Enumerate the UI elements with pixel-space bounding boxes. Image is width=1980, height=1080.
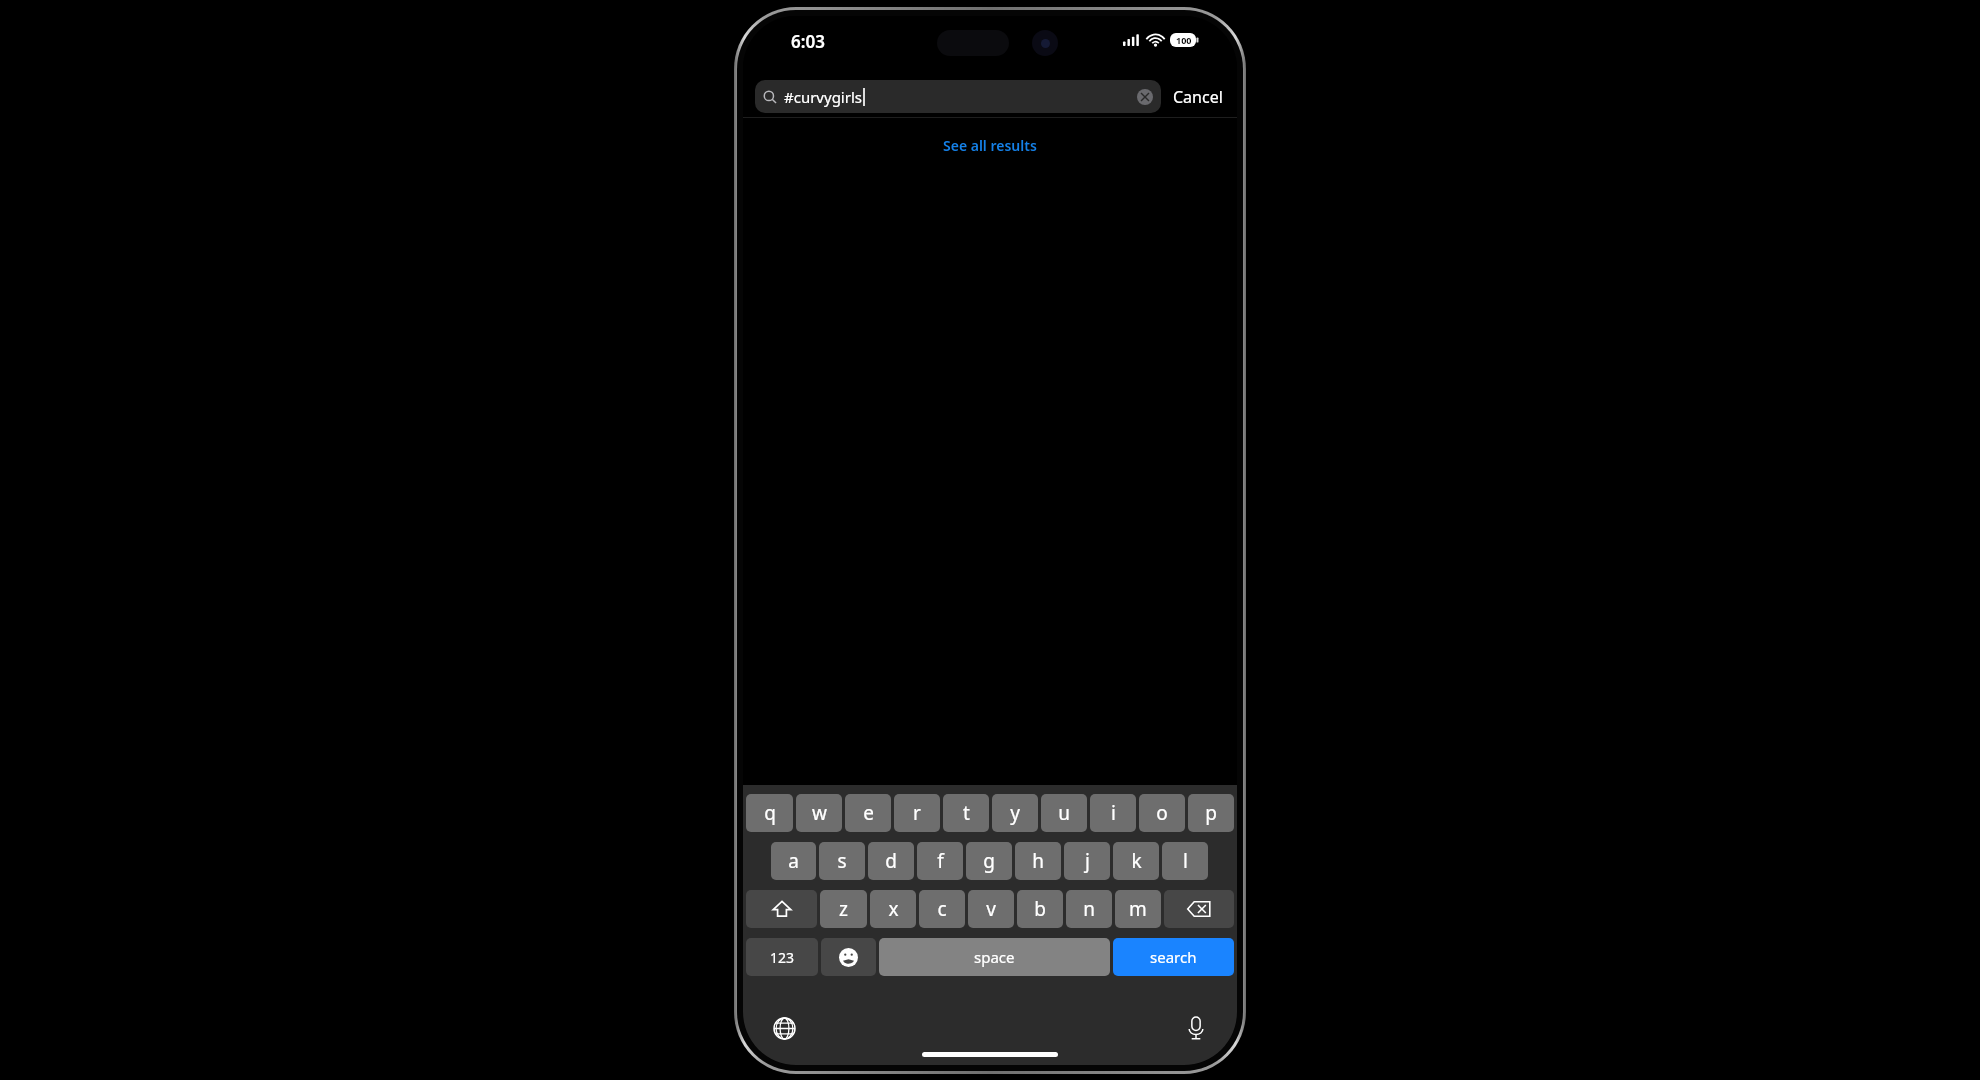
button[interactable]: y: [992, 794, 1038, 832]
button[interactable]: q: [746, 794, 793, 832]
button[interactable]: h: [1015, 842, 1061, 880]
staticText: r: [913, 800, 921, 826]
button[interactable]: #curvygirls: [755, 80, 1161, 113]
button[interactable]: j: [1064, 842, 1110, 880]
staticText: space: [974, 947, 1015, 967]
button[interactable]: Change keyboard language: [767, 1011, 801, 1045]
staticText: j: [1085, 848, 1090, 874]
button[interactable]: o: [1139, 794, 1185, 832]
staticText: v: [986, 896, 996, 922]
staticText: t: [963, 800, 970, 826]
staticText: #curvygirls: [784, 87, 862, 107]
button[interactable]: z: [820, 890, 867, 928]
staticText: z: [839, 896, 848, 922]
button[interactable]: b: [1017, 890, 1063, 928]
staticText: a: [788, 848, 799, 874]
staticText: m: [1129, 896, 1147, 922]
staticText: f: [937, 848, 944, 874]
button[interactable]: See all results: [927, 132, 1053, 159]
button[interactable]: Cancel: [1171, 82, 1225, 112]
button[interactable]: a: [771, 842, 816, 880]
button[interactable]: i: [1090, 794, 1136, 832]
staticText: c: [937, 896, 947, 922]
button[interactable]: t: [943, 794, 989, 832]
button[interactable]: Emoji: [821, 938, 876, 976]
button[interactable]: x: [870, 890, 916, 928]
staticText: o: [1156, 800, 1168, 826]
button[interactable]: Clear text: [1137, 89, 1153, 105]
staticText: x: [888, 896, 899, 922]
staticText: See all results: [943, 136, 1037, 155]
button[interactable]: v: [968, 890, 1014, 928]
button[interactable]: w: [796, 794, 842, 832]
staticText: q: [764, 800, 776, 826]
button[interactable]: c: [919, 890, 965, 928]
staticText: 100: [1176, 34, 1192, 46]
button[interactable]: Shift: [746, 890, 817, 928]
staticText: p: [1205, 800, 1217, 826]
button[interactable]: g: [966, 842, 1012, 880]
staticText: e: [863, 800, 874, 826]
button[interactable]: Backspace: [1164, 890, 1234, 928]
staticText: k: [1131, 848, 1142, 874]
staticText: g: [983, 848, 995, 874]
staticText: Cancel: [1173, 86, 1223, 108]
button[interactable]: k: [1113, 842, 1159, 880]
button[interactable]: l: [1162, 842, 1208, 880]
button[interactable]: s: [819, 842, 865, 880]
button[interactable]: 123: [746, 938, 818, 976]
staticText: w: [812, 800, 827, 826]
button[interactable]: search: [1113, 938, 1234, 976]
staticText: 123: [770, 948, 795, 967]
button[interactable]: d: [868, 842, 914, 880]
button[interactable]: p: [1188, 794, 1234, 832]
staticText: n: [1083, 896, 1095, 922]
staticText: 6:03: [791, 30, 825, 53]
button[interactable]: e: [845, 794, 891, 832]
staticText: search: [1150, 947, 1197, 967]
staticText: s: [837, 848, 847, 874]
staticText: u: [1058, 800, 1070, 826]
staticText: h: [1032, 848, 1044, 874]
staticText: b: [1034, 896, 1046, 922]
staticText: l: [1183, 848, 1188, 874]
staticText: d: [885, 848, 897, 874]
staticText: i: [1111, 800, 1116, 826]
button[interactable]: n: [1066, 890, 1112, 928]
button[interactable]: space: [879, 938, 1110, 976]
button[interactable]: u: [1041, 794, 1087, 832]
button[interactable]: f: [917, 842, 963, 880]
button[interactable]: Dictation: [1179, 1011, 1213, 1045]
button[interactable]: m: [1115, 890, 1161, 928]
staticText: y: [1010, 800, 1020, 826]
button[interactable]: r: [894, 794, 940, 832]
